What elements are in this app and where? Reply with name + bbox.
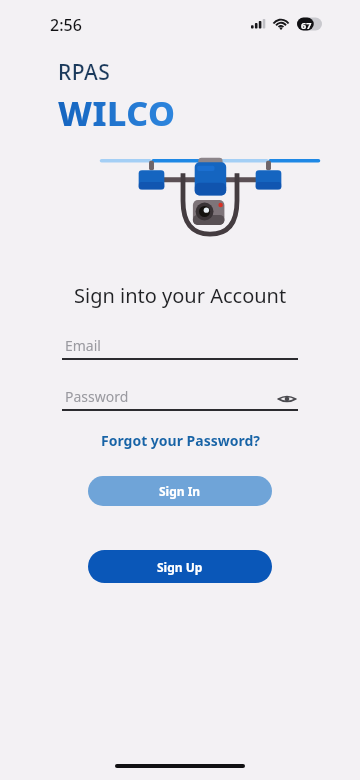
staticText: 67: [301, 19, 312, 31]
staticText: Sign In: [159, 483, 201, 499]
button[interactable]: Forgot your Password?: [95, 428, 266, 453]
staticText: WILCO: [58, 90, 176, 136]
staticText: Forgot your Password?: [101, 431, 260, 450]
button[interactable]: Sign Up: [88, 550, 272, 583]
button[interactable]: Sign In: [88, 476, 272, 506]
button[interactable]: Password: [62, 385, 298, 411]
staticText: Sign Up: [157, 559, 203, 575]
staticText: Password: [65, 387, 129, 406]
staticText: 2:56: [50, 14, 82, 36]
staticText: Sign into your Account: [74, 282, 287, 309]
staticText: RPAS: [58, 58, 111, 87]
staticText: Email: [65, 336, 101, 355]
button[interactable]: Email: [62, 334, 298, 360]
button[interactable]: Show password: [276, 388, 298, 410]
